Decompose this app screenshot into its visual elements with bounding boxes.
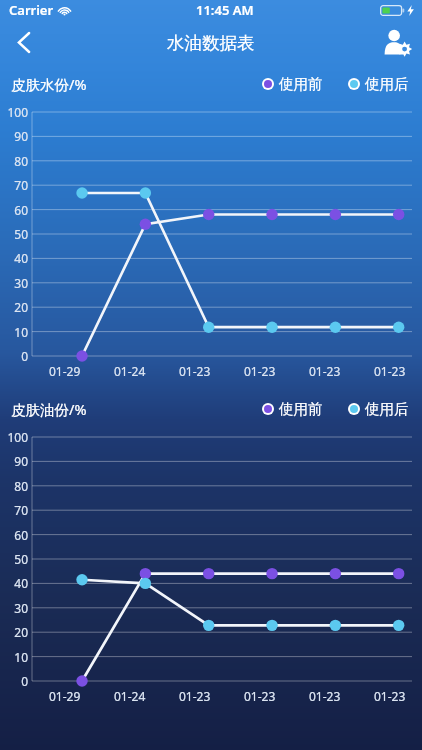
staticText: 使用前 xyxy=(279,75,323,93)
staticText: 10 xyxy=(0,649,28,665)
staticText: 使用前 xyxy=(279,400,323,418)
staticText: 20 xyxy=(0,624,28,640)
staticText: 30 xyxy=(0,600,28,616)
staticText: 50 xyxy=(0,226,28,242)
staticText: 100 xyxy=(0,104,28,120)
staticText: 水油数据表 xyxy=(167,32,255,54)
button[interactable]: 使用前 xyxy=(262,75,323,93)
staticText: 80 xyxy=(0,153,28,169)
staticText: 01-23 xyxy=(244,363,276,379)
staticText: 100 xyxy=(0,429,28,445)
staticText: 70 xyxy=(0,502,28,518)
staticText: 40 xyxy=(0,250,28,266)
staticText: 90 xyxy=(0,128,28,144)
staticText: 60 xyxy=(0,527,28,543)
staticText: 90 xyxy=(0,453,28,469)
staticText: 皮肤水份/% xyxy=(11,74,87,94)
staticText: 01-29 xyxy=(49,688,81,704)
staticText: 01-29 xyxy=(49,363,81,379)
staticText: 70 xyxy=(0,177,28,193)
staticText: 01-23 xyxy=(309,688,341,704)
staticText: 01-23 xyxy=(374,688,406,704)
staticText: 10 xyxy=(0,324,28,340)
staticText: 0 xyxy=(0,348,28,364)
staticText: 01-24 xyxy=(114,363,146,379)
button[interactable]: 使用后 xyxy=(348,400,409,418)
staticText: 30 xyxy=(0,275,28,291)
button[interactable]: 使用后 xyxy=(348,75,409,93)
staticText: Carrier xyxy=(9,1,54,19)
staticText: 01-23 xyxy=(179,688,211,704)
staticText: 11:45 AM xyxy=(196,1,254,19)
staticText: 01-23 xyxy=(244,688,276,704)
staticText: 40 xyxy=(0,575,28,591)
staticText: 01-23 xyxy=(309,363,341,379)
staticText: 50 xyxy=(0,551,28,567)
staticText: 01-23 xyxy=(374,363,406,379)
button[interactable]: 使用前 xyxy=(262,400,323,418)
staticText: 80 xyxy=(0,478,28,494)
staticText: 皮肤油份/% xyxy=(11,399,87,419)
button[interactable]: User settings xyxy=(372,20,422,65)
staticText: 使用后 xyxy=(365,75,409,93)
staticText: 20 xyxy=(0,299,28,315)
staticText: 01-23 xyxy=(179,363,211,379)
staticText: 01-24 xyxy=(114,688,146,704)
button[interactable]: Back xyxy=(0,20,48,65)
staticText: 0 xyxy=(0,673,28,689)
staticText: 60 xyxy=(0,202,28,218)
staticText: 使用后 xyxy=(365,400,409,418)
